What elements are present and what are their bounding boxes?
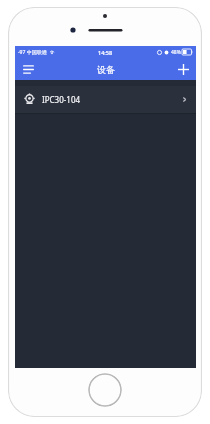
staticText: -97 中国联通 xyxy=(18,49,47,56)
button[interactable]: Add device xyxy=(174,60,192,78)
staticText: 48% xyxy=(171,49,181,56)
staticText: IPC30-104 xyxy=(42,94,81,105)
staticText: 设备 xyxy=(97,64,115,75)
button[interactable]: Home xyxy=(88,373,122,407)
button[interactable]: Menu xyxy=(19,60,37,78)
staticText: 14:58 xyxy=(98,49,113,56)
button[interactable]: IPC30-104 xyxy=(15,86,196,113)
